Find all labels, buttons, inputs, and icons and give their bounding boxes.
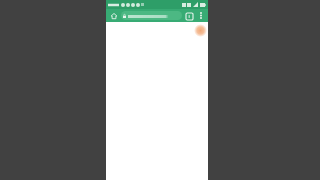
button[interactable]: Home [109, 11, 119, 21]
button[interactable] [121, 11, 182, 20]
button[interactable]: More options [196, 11, 205, 20]
button[interactable]: Switch tabs [184, 11, 194, 21]
